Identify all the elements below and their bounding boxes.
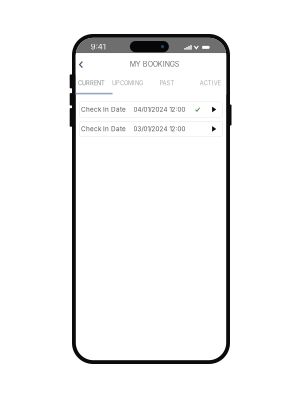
button[interactable]: ACTIVE xyxy=(196,76,224,90)
button[interactable]: UPCOMING xyxy=(110,76,144,90)
staticText: PAST xyxy=(159,80,174,87)
staticText: 9:41 xyxy=(91,42,106,51)
button[interactable]: Check In Date xyxy=(80,102,222,117)
staticText: ACTIVE xyxy=(200,80,221,87)
button[interactable]: Check In Date xyxy=(80,121,222,136)
button[interactable]: CURRENT xyxy=(76,76,106,90)
staticText: Check In Date xyxy=(81,106,126,113)
staticText: MY BOOKINGS xyxy=(130,60,180,68)
staticText: CURRENT xyxy=(78,80,105,87)
staticText: 03/01/2024 12:00 xyxy=(133,125,185,133)
button[interactable]: Back xyxy=(74,55,88,75)
button[interactable]: PAST xyxy=(155,76,179,90)
staticText: UPCOMING xyxy=(112,80,143,87)
staticText: Check In Date xyxy=(81,125,126,133)
staticText: 04/01/2024 12:00 xyxy=(133,106,185,113)
